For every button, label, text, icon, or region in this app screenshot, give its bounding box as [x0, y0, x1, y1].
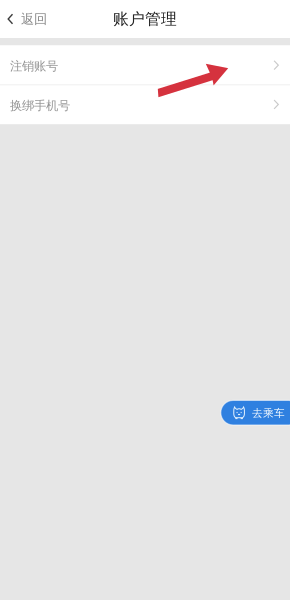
staticText: 注销账号 — [10, 58, 58, 74]
button[interactable]: 换绑手机号 — [0, 85, 290, 124]
button[interactable]: 返回 — [0, 0, 57, 38]
button[interactable]: 注销账号 — [0, 45, 290, 85]
staticText: 返回 — [21, 11, 47, 27]
staticText: 去乘车 — [252, 407, 285, 420]
button[interactable]: 去乘车 — [221, 400, 290, 425]
staticText: 换绑手机号 — [10, 98, 70, 113]
staticText: 账户管理 — [113, 9, 177, 29]
